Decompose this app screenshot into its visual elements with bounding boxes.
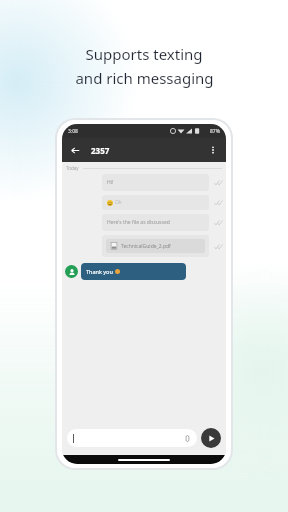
button[interactable]: Ok: [102, 195, 209, 210]
staticText: Supports texting: [85, 44, 203, 64]
staticText: and rich messaging: [75, 68, 214, 88]
staticText: Ok: [115, 199, 122, 206]
staticText: TechnicalGuide_2.pdf: [121, 243, 171, 250]
staticText: 3:08: [68, 128, 78, 135]
staticText: Today: [66, 165, 79, 171]
button[interactable]: More options: [205, 142, 221, 158]
button[interactable]: Here's the file as discussed: [102, 214, 209, 231]
other: Attach file: [184, 435, 191, 442]
staticText: Thank you: [86, 268, 113, 275]
button[interactable]: Back: [67, 142, 83, 158]
staticText: Hi!: [107, 179, 114, 186]
button[interactable]: Hi!: [102, 174, 209, 191]
staticText: 87%: [210, 128, 220, 135]
button[interactable]: TechnicalGuide_2.pdf: [102, 235, 209, 257]
button[interactable]: Send: [201, 428, 221, 448]
button[interactable]: Thank you: [81, 263, 186, 280]
staticText: Here's the file as discussed: [107, 219, 170, 226]
button[interactable]: Attach file: [67, 429, 197, 447]
staticText: 2357: [91, 145, 110, 156]
